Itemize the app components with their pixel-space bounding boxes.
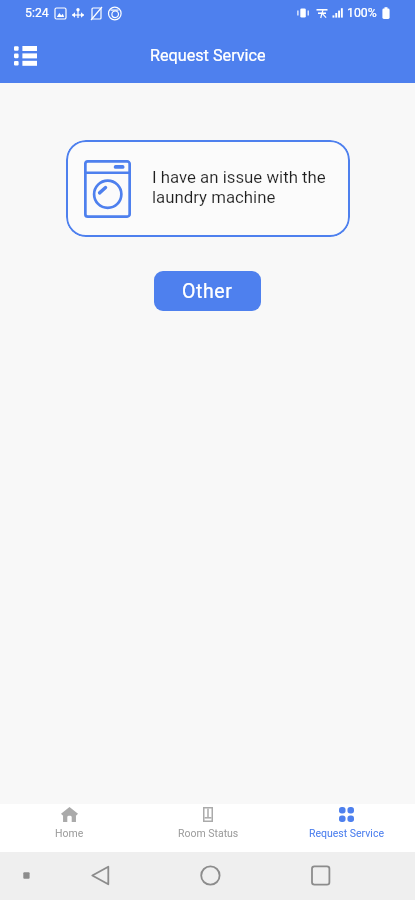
staticText: I have an issue with the laundry machine — [152, 167, 340, 207]
staticText: Home — [55, 827, 84, 839]
button[interactable]: I have an issue with the laundry machine — [66, 140, 350, 237]
staticText: 100% — [347, 6, 377, 20]
staticText: Other — [182, 280, 233, 303]
button[interactable]: Home — [0, 804, 139, 852]
button[interactable]: Request Service — [277, 804, 415, 852]
button[interactable]: Open navigation menu — [3, 34, 47, 78]
staticText: Request Service — [150, 46, 266, 65]
button[interactable]: Other — [154, 271, 261, 311]
staticText: Room Status — [178, 827, 239, 839]
staticText: Request Service — [309, 827, 384, 839]
button[interactable]: Room Status — [139, 804, 277, 852]
staticText: 5:24 — [25, 6, 49, 20]
